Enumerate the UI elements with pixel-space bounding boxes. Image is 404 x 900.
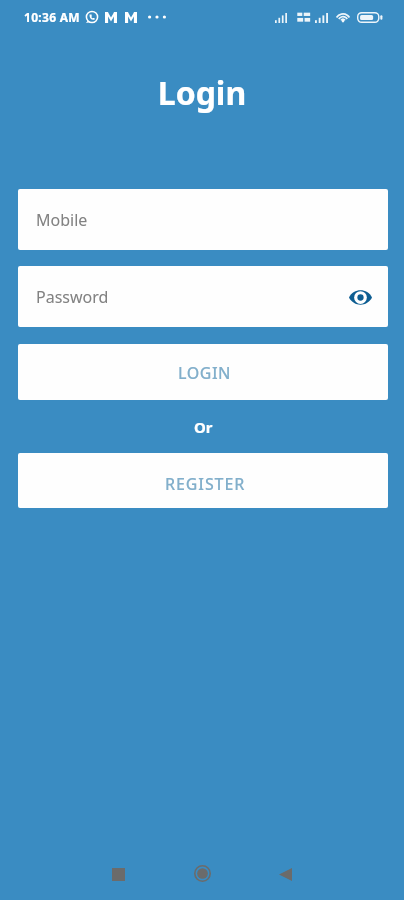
button[interactable]: LOGIN <box>18 344 388 400</box>
staticText: Or <box>194 417 213 437</box>
button[interactable]: Recent apps <box>90 847 146 900</box>
staticText: LOGIN <box>178 362 231 384</box>
staticText: Password <box>36 286 109 308</box>
staticText: Mobile <box>36 209 88 231</box>
button[interactable]: Home <box>174 846 230 900</box>
button[interactable]: REGISTER <box>18 453 388 508</box>
button[interactable]: Show password <box>342 279 378 315</box>
staticText: Login <box>0 71 404 115</box>
button[interactable]: Back <box>257 847 313 900</box>
staticText: REGISTER <box>165 473 246 495</box>
button[interactable]: Mobile <box>18 189 388 250</box>
staticText: 10:36 AM <box>24 9 80 25</box>
button[interactable]: Password <box>18 266 388 327</box>
